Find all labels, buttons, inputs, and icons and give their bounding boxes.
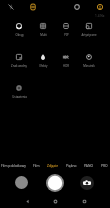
staticText: 1.4 Nx [95, 14, 105, 18]
button[interactable]: PANO [83, 159, 95, 170]
staticText: Multi [40, 33, 47, 37]
staticText: Okrąg [15, 33, 24, 37]
button[interactable]: Back [18, 194, 36, 208]
staticText: Minutnik [83, 64, 95, 68]
button[interactable]: Film poklatkowy [0, 159, 27, 170]
staticText: Piękno [66, 163, 77, 167]
button[interactable]: Take photo [46, 174, 64, 192]
staticText: HDR [63, 64, 69, 68]
button[interactable]: Gallery [15, 176, 28, 189]
staticText: PIP [64, 33, 69, 37]
button[interactable]: Recents [75, 194, 93, 208]
staticText: Efekty [39, 64, 48, 68]
staticText: PRO [101, 163, 108, 167]
button[interactable]: Piękno [65, 159, 78, 170]
staticText: PANO [84, 163, 94, 167]
button[interactable]: Okrąg [7, 17, 31, 38]
button[interactable]: Artystyczne [77, 17, 101, 38]
staticText: Znak wodny [11, 64, 27, 68]
button[interactable]: HDR [54, 48, 78, 69]
button[interactable]: Multi [31, 17, 55, 38]
button[interactable]: Minutnik [77, 48, 101, 69]
staticText: Film poklatkowy [1, 163, 26, 167]
staticText: Ustawienia [12, 95, 27, 99]
staticText: Film [33, 163, 40, 167]
staticText: Zdjęcie [47, 163, 59, 167]
button[interactable]: Zdjęcie [46, 159, 60, 170]
button[interactable]: PIP [54, 17, 78, 38]
button[interactable]: Smart assistant [26, 0, 40, 14]
button[interactable]: Home [46, 194, 64, 208]
button[interactable]: PRO [100, 159, 109, 170]
staticText: Artystyczne [81, 33, 97, 37]
button[interactable]: Colour mode [70, 0, 84, 14]
button[interactable]: Efekty [31, 48, 55, 69]
button[interactable]: Znak wodny [7, 48, 31, 69]
button[interactable]: More settings [93, 0, 107, 14]
button[interactable]: Film [32, 159, 41, 170]
button[interactable]: Flash off [4, 0, 18, 14]
button[interactable]: Ustawienia [7, 79, 31, 100]
button[interactable]: Switch camera [80, 176, 94, 190]
